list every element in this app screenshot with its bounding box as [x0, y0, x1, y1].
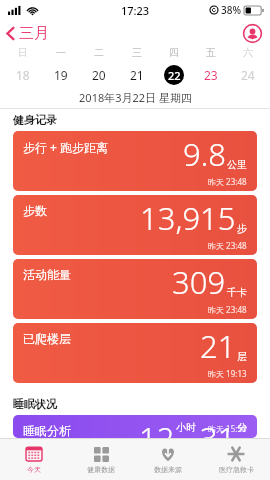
- button[interactable]: 24: [229, 64, 266, 86]
- staticText: 医疗急救卡: [219, 465, 254, 474]
- staticText: 22: [168, 68, 181, 83]
- button[interactable]: Profile: [243, 24, 262, 43]
- button[interactable]: 三月: [0, 22, 57, 45]
- staticText: 20: [92, 67, 106, 83]
- button[interactable]: 20: [80, 64, 118, 86]
- staticText: 31: [200, 417, 236, 438]
- staticText: 24: [241, 67, 255, 83]
- staticText: 五: [206, 46, 216, 59]
- staticText: 9.8: [183, 133, 226, 175]
- button[interactable]: 睡眠分析: [13, 415, 257, 438]
- staticText: 小时: [176, 421, 196, 434]
- staticText: 日: [18, 46, 28, 59]
- button[interactable]: 今天: [0, 439, 67, 480]
- button[interactable]: 23: [192, 64, 229, 86]
- button[interactable]: 18: [4, 64, 42, 86]
- staticText: 23: [204, 67, 218, 83]
- staticText: 三: [132, 46, 142, 59]
- button[interactable]: 数据来源: [134, 439, 202, 480]
- button[interactable]: 步行 + 跑步距离: [13, 131, 257, 191]
- staticText: 六: [243, 46, 253, 59]
- staticText: 健康数据: [87, 465, 115, 474]
- staticText: 已爬楼层: [23, 331, 71, 346]
- staticText: 健身记录: [13, 113, 57, 127]
- staticText: 二: [94, 46, 104, 59]
- staticText: 分: [237, 421, 247, 434]
- staticText: 今天: [27, 465, 41, 474]
- staticText: 12: [139, 417, 175, 438]
- button[interactable]: 已爬楼层: [13, 323, 257, 383]
- staticText: 17:23: [121, 3, 150, 18]
- button[interactable]: 21: [118, 64, 155, 86]
- button[interactable]: 步数: [13, 195, 257, 255]
- button[interactable]: 医疗急救卡: [202, 439, 270, 480]
- staticText: 步行 + 跑步距离: [23, 139, 109, 155]
- staticText: 昨天 23:48: [208, 304, 247, 315]
- staticText: 昨天 23:48: [208, 240, 247, 251]
- button[interactable]: 22: [155, 64, 192, 86]
- staticText: 21: [130, 67, 144, 83]
- staticText: 18: [16, 67, 30, 83]
- staticText: 四: [169, 46, 179, 59]
- staticText: 昨天 19:13: [208, 368, 247, 379]
- staticText: 昨天 23:48: [208, 176, 247, 187]
- staticText: 一: [56, 46, 66, 59]
- staticText: 13,915: [140, 197, 236, 239]
- staticText: 公里: [227, 158, 247, 171]
- button[interactable]: 19: [42, 64, 80, 86]
- staticText: 昨天 15:50: [208, 423, 247, 434]
- button[interactable]: 健康数据: [67, 439, 134, 480]
- staticText: 三月: [19, 24, 49, 43]
- staticText: 21: [200, 325, 236, 367]
- staticText: 38%: [221, 3, 241, 17]
- staticText: 数据来源: [154, 465, 182, 474]
- staticText: 步: [237, 222, 247, 235]
- staticText: 睡眠状况: [13, 397, 57, 411]
- staticText: 活动能量: [23, 267, 71, 282]
- staticText: 步数: [23, 203, 47, 218]
- staticText: 层: [237, 350, 247, 363]
- staticText: 2018年3月22日 星期四: [79, 90, 192, 105]
- button[interactable]: 活动能量: [13, 259, 257, 319]
- staticText: 309: [172, 261, 226, 303]
- staticText: 19: [54, 67, 68, 83]
- staticText: 睡眠分析: [23, 423, 71, 438]
- staticText: 千卡: [227, 286, 247, 299]
